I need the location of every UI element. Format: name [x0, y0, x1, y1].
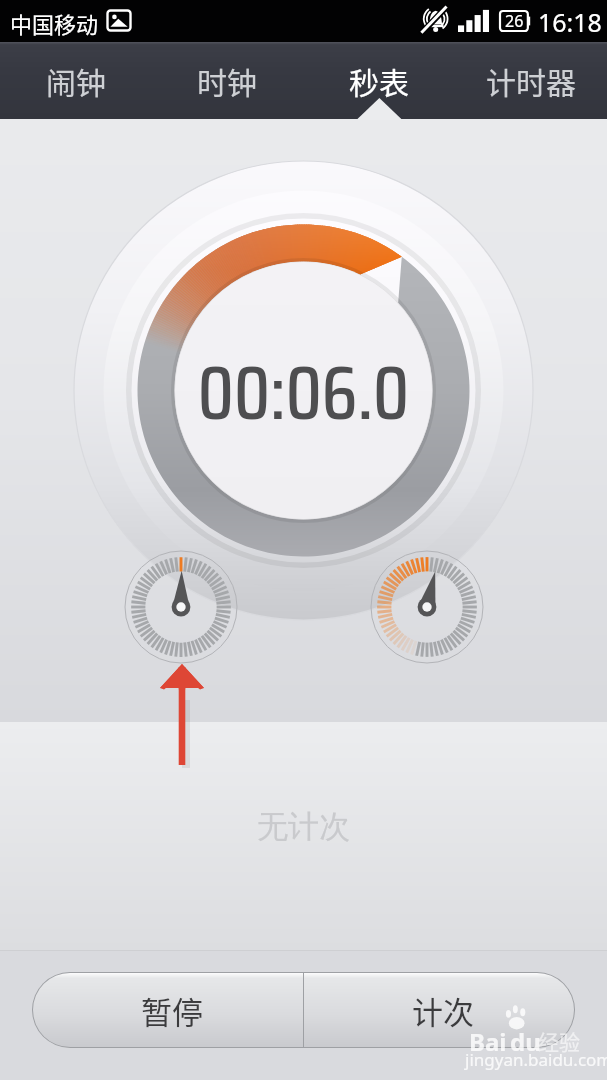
button[interactable]: 闹钟 [0, 42, 151, 119]
staticText: 16:18 [538, 5, 602, 39]
staticText: 闹钟 [46, 59, 106, 102]
staticText: 时钟 [197, 59, 257, 102]
staticText: jingyan.baidu.com [465, 1048, 607, 1071]
staticText: 计时器 [486, 59, 576, 102]
staticText: 中国移动 [10, 7, 99, 39]
button[interactable]: 时钟 [151, 42, 303, 119]
other: Screenshot notification [107, 10, 131, 31]
staticText: 计次 [412, 988, 474, 1033]
staticText: 经验 [538, 1026, 580, 1056]
staticText: du [510, 1025, 541, 1058]
button[interactable]: 暂停 [32, 972, 303, 1048]
button[interactable]: 计时器 [455, 42, 607, 119]
staticText: 无计次 [257, 807, 350, 846]
staticText: Bai [469, 1025, 507, 1058]
staticText: 秒表 [349, 59, 409, 102]
button[interactable]: 计次 [303, 972, 575, 1048]
staticText: 暂停 [141, 988, 203, 1033]
staticText: 00:06.0 [0, 334, 607, 452]
staticText: 26 [505, 10, 524, 32]
button[interactable]: 秒表 [303, 42, 455, 119]
